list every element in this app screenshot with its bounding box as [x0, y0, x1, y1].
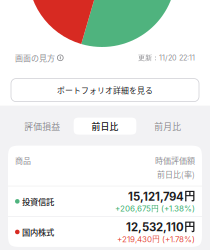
button[interactable]: 国内株式 — [8, 217, 202, 247]
staticText: 12,532,110円 — [126, 220, 195, 234]
staticText: 時価評価額 — [155, 155, 195, 166]
staticText: 前月比 — [154, 120, 181, 132]
button[interactable]: 投資信託 — [8, 186, 202, 216]
button[interactable]: 前日比 — [74, 118, 136, 135]
button[interactable]: 前月比 — [136, 118, 199, 135]
staticText: 投資信託 — [22, 195, 54, 207]
button[interactable]: 画面の見方 — [15, 51, 64, 65]
staticText: 画面の見方 — [15, 52, 55, 64]
staticText: +219,430円 (+1.78%) — [117, 234, 195, 244]
staticText: +206,675円 (+1.38%) — [115, 203, 195, 214]
staticText: 更新：11/20 22:11 — [138, 53, 195, 62]
button[interactable]: ポートフォリオ詳細を見る — [11, 79, 199, 102]
staticText: 商品 — [15, 155, 31, 166]
staticText: 前日比(率) — [157, 168, 195, 180]
staticText: 国内株式 — [22, 226, 54, 238]
button[interactable]: 評価損益 — [11, 118, 74, 135]
staticText: ポートフォリオ詳細を見る — [57, 84, 153, 96]
staticText: 15,121,794円 — [128, 189, 195, 203]
staticText: 評価損益 — [24, 120, 60, 132]
staticText: 前日比 — [91, 120, 118, 132]
